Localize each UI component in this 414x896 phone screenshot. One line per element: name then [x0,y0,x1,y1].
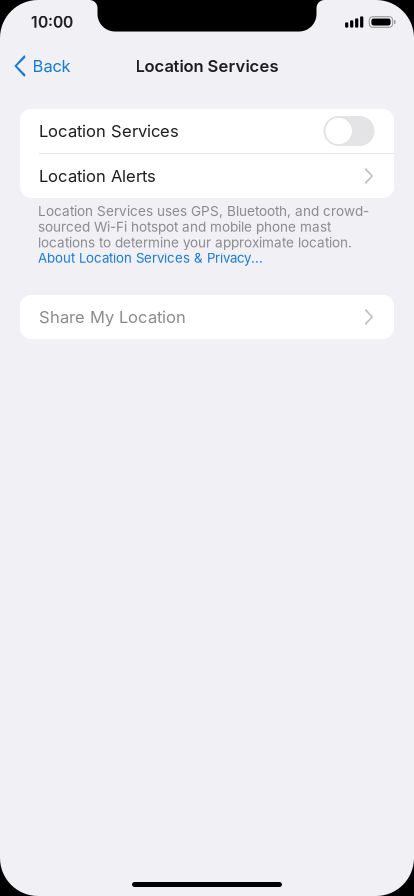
button[interactable]: Share My Location [20,295,394,339]
staticText: Location Alerts [39,166,156,186]
button[interactable]: Location Alerts [20,154,394,198]
staticText: About Location Services & Privacy... [38,250,263,266]
staticText: sourced Wi-Fi hotspot and mobile phone m… [38,219,331,235]
button[interactable]: Back [0,44,83,88]
staticText: Location Services [135,56,278,76]
staticText: Location Services uses GPS, Bluetooth, a… [38,203,369,219]
button[interactable]: About Location Services & Privacy... [38,250,263,266]
staticText: Share My Location [39,307,186,327]
staticText: Back [33,56,71,76]
staticText: Location Services [39,121,179,141]
staticText: 10:00 [31,13,73,31]
staticText: locations to determine your approximate … [38,234,352,251]
button[interactable]: Location Services [20,109,394,153]
